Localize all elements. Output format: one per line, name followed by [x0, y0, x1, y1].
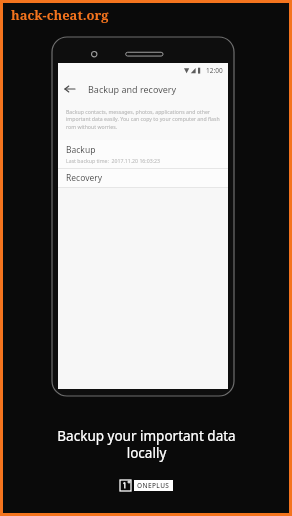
button[interactable]: Backup: [58, 140, 228, 168]
staticText: Backup and recovery: [88, 83, 177, 95]
staticText: Backup: [66, 144, 96, 156]
button[interactable]: Recovery: [58, 169, 228, 187]
staticText: ONEPLUS: [137, 481, 170, 490]
staticText: 12:00: [206, 66, 223, 75]
button[interactable]: Back: [58, 77, 82, 101]
staticText: Recovery: [66, 172, 103, 184]
staticText: Last backup time: 2017.11.20 16:03:23: [66, 157, 160, 164]
staticText: hack-cheat.org: [11, 6, 109, 24]
staticText: Backup your important data locally: [57, 427, 236, 462]
staticText: Backup contacts, messages, photos, appli…: [66, 108, 220, 131]
